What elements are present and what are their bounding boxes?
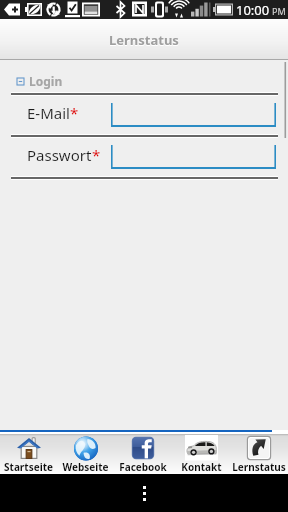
button[interactable]: Startseite xyxy=(0,434,57,474)
staticText: Startseite xyxy=(4,460,53,474)
button[interactable]: Lernstatus xyxy=(230,434,288,474)
staticText: Login xyxy=(29,73,63,89)
staticText: 10:00 xyxy=(236,1,270,19)
staticText: Kontakt xyxy=(181,460,222,474)
staticText: * xyxy=(92,145,101,165)
button[interactable]: Facebook xyxy=(114,434,172,474)
staticText: PM xyxy=(272,5,286,17)
button[interactable]: Kontakt xyxy=(172,434,230,474)
button[interactable]: Webseite xyxy=(57,434,114,474)
staticText: Lernstatus xyxy=(232,460,286,474)
button[interactable]: Passwort xyxy=(111,145,276,169)
button[interactable]: E-Mail xyxy=(111,103,276,127)
staticText: Facebook xyxy=(119,460,167,474)
button[interactable]: More options xyxy=(137,480,152,507)
staticText: Lernstatus xyxy=(109,31,179,49)
staticText: Webseite xyxy=(62,460,109,474)
staticText: E-Mail xyxy=(27,103,70,123)
staticText: Lernstatus xyxy=(109,32,179,50)
staticText: Passwort xyxy=(27,145,92,165)
staticText: * xyxy=(70,103,79,123)
